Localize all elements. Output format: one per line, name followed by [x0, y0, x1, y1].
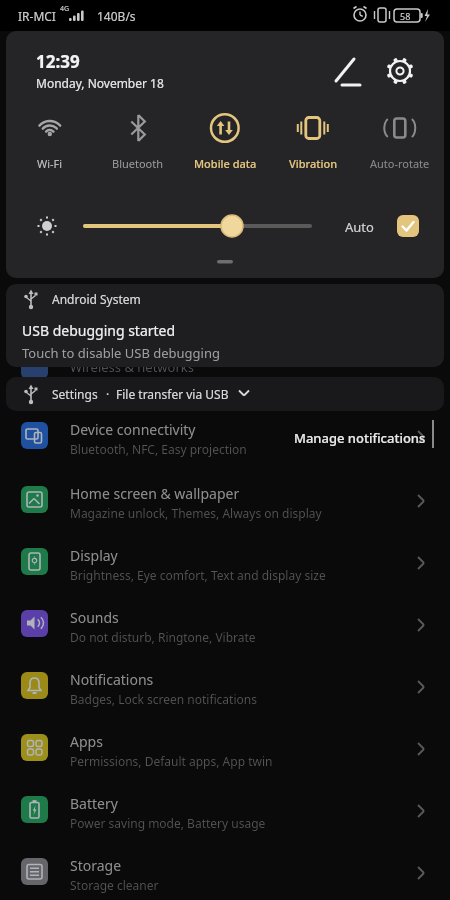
staticText: 140B/s [97, 8, 136, 24]
button[interactable]: Bluetooth [94, 93, 182, 173]
button[interactable]: Battery [0, 790, 450, 852]
button[interactable]: Apps [0, 728, 450, 790]
staticText: Android System [52, 291, 141, 307]
button[interactable]: Settings [6, 377, 444, 411]
button[interactable] [397, 215, 419, 237]
button[interactable]: Android System [6, 284, 444, 367]
staticText: Badges, Lock screen notifications [70, 691, 257, 707]
staticText: Apps [70, 732, 103, 751]
button[interactable]: Storage [0, 852, 450, 900]
staticText: 4G [60, 4, 70, 14]
staticText: Manage notifications [294, 429, 426, 447]
staticText: Magazine unlock, Themes, Always on displ… [70, 505, 322, 521]
button[interactable]: Device connectivity [0, 416, 450, 478]
staticText: Storage [70, 856, 122, 875]
button[interactable] [378, 47, 422, 91]
staticText: USB debugging started [22, 321, 176, 340]
button[interactable]: Vibration [269, 93, 357, 173]
staticText: Do not disturb, Ringtone, Vibrate [70, 629, 256, 645]
staticText: Wi-Fi [37, 156, 63, 171]
staticText: Bluetooth [112, 156, 164, 171]
staticText: Device connectivity [70, 420, 196, 439]
staticText: Brightness, Eye comfort, Text and displa… [70, 567, 326, 583]
staticText: File transfer via USB [116, 386, 229, 402]
staticText: Monday, November 18 [36, 75, 164, 91]
staticText: Auto-rotate [370, 156, 430, 171]
button[interactable]: Home screen & wallpaper [0, 480, 450, 542]
button[interactable]: Sounds [0, 604, 450, 666]
staticText: Touch to disable USB debugging [22, 344, 220, 362]
staticText: Auto [345, 218, 374, 236]
staticText: Power saving mode, Battery usage [70, 815, 266, 831]
button[interactable]: Mobile data [181, 93, 269, 173]
staticText: Mobile data [194, 156, 257, 171]
staticText: Notifications [70, 670, 154, 689]
staticText: Sounds [70, 608, 119, 627]
staticText: 58 [400, 10, 411, 22]
staticText: Storage cleaner [70, 877, 159, 893]
staticText: Home screen & wallpaper [70, 484, 240, 503]
staticText: 12:39 [36, 50, 80, 73]
staticText: Settings [52, 386, 98, 402]
staticText: Permissions, Default apps, App twin [70, 753, 273, 769]
staticText: Display [70, 546, 118, 565]
button[interactable]: Auto-rotate [356, 93, 444, 173]
staticText: Battery [70, 794, 118, 813]
button[interactable]: Manage notifications [294, 429, 426, 447]
staticText: · [106, 386, 110, 402]
button[interactable] [326, 49, 370, 93]
staticText: IR-MCI [18, 8, 56, 24]
button[interactable]: Wi-Fi [6, 93, 94, 173]
staticText: Vibration [289, 156, 338, 171]
button[interactable]: Display [0, 542, 450, 604]
button[interactable]: Notifications [0, 666, 450, 728]
staticText: Wireless & networks [70, 358, 194, 376]
staticText: Bluetooth, NFC, Easy projection [70, 441, 247, 457]
